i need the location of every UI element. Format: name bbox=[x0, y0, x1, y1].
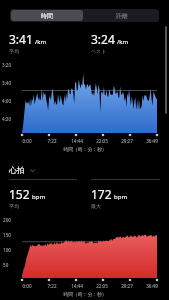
staticText: 3:40 bbox=[2, 80, 12, 86]
staticText: /km bbox=[35, 38, 47, 46]
button[interactable]: 距離 bbox=[84, 9, 159, 22]
button[interactable]: 3:41 bbox=[9, 31, 77, 54]
staticText: 平均 bbox=[9, 203, 19, 209]
staticText: /km bbox=[117, 38, 129, 46]
staticText: 3:41 bbox=[9, 31, 33, 47]
staticText: 最大 bbox=[91, 203, 101, 209]
staticText: 時間（時：分：秒） bbox=[63, 291, 107, 297]
staticText: 14:44 bbox=[71, 138, 83, 144]
staticText: 36:49 bbox=[146, 283, 158, 289]
staticText: 200 bbox=[3, 217, 11, 223]
staticText: 0:00 bbox=[22, 138, 32, 144]
staticText: 距離 bbox=[116, 12, 128, 20]
staticText: 0:00 bbox=[22, 283, 32, 289]
staticText: 4:20 bbox=[2, 116, 12, 122]
staticText: 22:05 bbox=[96, 283, 108, 289]
staticText: 29:27 bbox=[121, 138, 133, 144]
staticText: 22:05 bbox=[96, 138, 108, 144]
staticText: 29:27 bbox=[121, 283, 133, 289]
staticText: 3:20 bbox=[2, 62, 12, 68]
staticText: 心拍 bbox=[9, 165, 25, 175]
staticText: 時間 bbox=[41, 12, 53, 20]
staticText: 50 bbox=[3, 262, 9, 268]
staticText: 14:44 bbox=[71, 283, 83, 289]
button[interactable]: 3:24 bbox=[91, 31, 160, 54]
button[interactable]: 心拍 bbox=[0, 164, 169, 179]
staticText: 36:49 bbox=[146, 138, 158, 144]
staticText: bpm bbox=[114, 193, 127, 201]
staticText: 4:00 bbox=[2, 98, 12, 104]
staticText: 172 bbox=[91, 186, 112, 202]
staticText: 平均 bbox=[9, 48, 19, 54]
other: Expand heart rate bbox=[29, 167, 36, 174]
staticText: 100 bbox=[3, 247, 11, 253]
staticText: ベスト bbox=[91, 48, 107, 54]
staticText: 152 bbox=[9, 186, 30, 202]
button[interactable]: 172 bbox=[91, 186, 160, 209]
staticText: 3:24 bbox=[91, 31, 115, 47]
staticText: 時間（時：分：秒） bbox=[63, 146, 107, 152]
staticText: 150 bbox=[3, 232, 11, 238]
button[interactable]: 152 bbox=[9, 186, 77, 209]
button[interactable]: 時間 bbox=[11, 10, 83, 21]
staticText: 7:22 bbox=[47, 283, 57, 289]
staticText: 7:22 bbox=[47, 138, 57, 144]
staticText: bpm bbox=[32, 193, 45, 201]
